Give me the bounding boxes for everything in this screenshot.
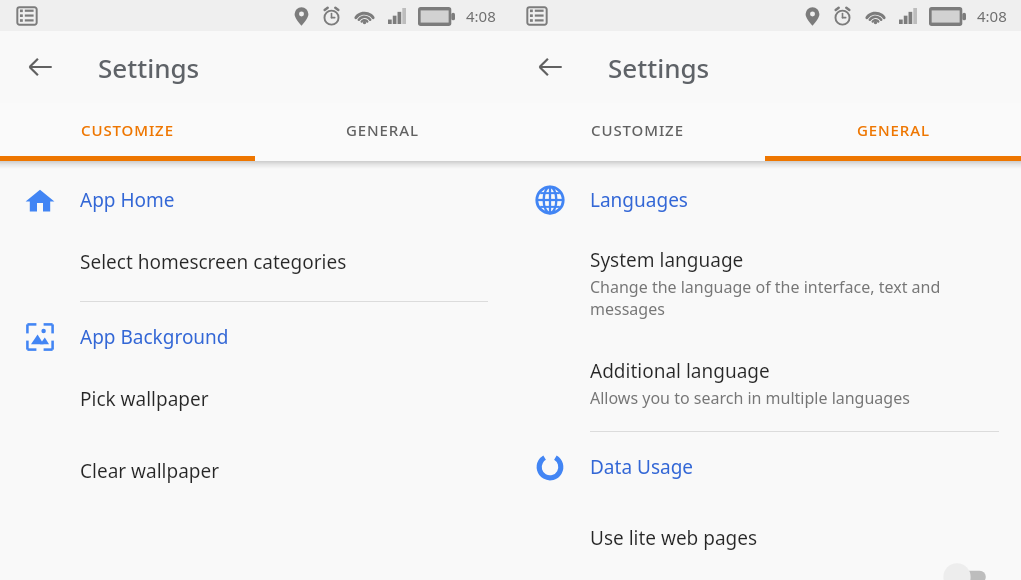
button[interactable]: CUSTOMIZE	[0, 103, 255, 156]
button[interactable]: Pick wallpaper	[0, 358, 510, 412]
staticText: Use lite web pages	[590, 525, 758, 551]
staticText: App Home	[80, 187, 175, 213]
staticText: CUSTOMIZE	[81, 120, 174, 140]
button[interactable]: Back	[14, 41, 66, 93]
button[interactable]: System language	[510, 221, 1021, 320]
staticText: 4:08	[977, 6, 1007, 26]
staticText: Change the language of the interface, te…	[590, 276, 941, 320]
button[interactable]: CUSTOMIZE	[510, 103, 765, 156]
staticText: Data Usage	[590, 454, 694, 480]
staticText: CUSTOMIZE	[591, 120, 684, 140]
staticText: GENERAL	[857, 120, 930, 140]
button[interactable]: Languages	[510, 169, 1021, 221]
button[interactable]: Data Usage	[510, 432, 1021, 488]
button[interactable]: Clear wallpaper	[0, 412, 510, 484]
staticText: 4:08	[466, 6, 496, 26]
staticText: Settings	[98, 50, 200, 85]
button[interactable]: GENERAL	[765, 103, 1021, 156]
button[interactable]: App Home	[0, 169, 510, 221]
staticText: Allows you to search in multiple languag…	[590, 387, 910, 409]
staticText: System language	[590, 247, 744, 273]
button[interactable]: Use lite web pages	[510, 488, 1021, 551]
button[interactable]: Select homescreen categories	[0, 221, 510, 275]
button[interactable]: Additional language	[510, 320, 1021, 409]
staticText: GENERAL	[346, 120, 419, 140]
staticText: Pick wallpaper	[80, 386, 209, 412]
staticText: Settings	[608, 50, 710, 85]
staticText: Additional language	[590, 358, 770, 384]
staticText: Clear wallpaper	[80, 458, 220, 484]
staticText: Languages	[590, 187, 688, 213]
staticText: App Background	[80, 324, 229, 350]
button[interactable]: App Background	[0, 302, 510, 358]
button[interactable]: Back	[524, 41, 576, 93]
button[interactable]: GENERAL	[255, 103, 510, 156]
staticText: Select homescreen categories	[80, 249, 347, 275]
